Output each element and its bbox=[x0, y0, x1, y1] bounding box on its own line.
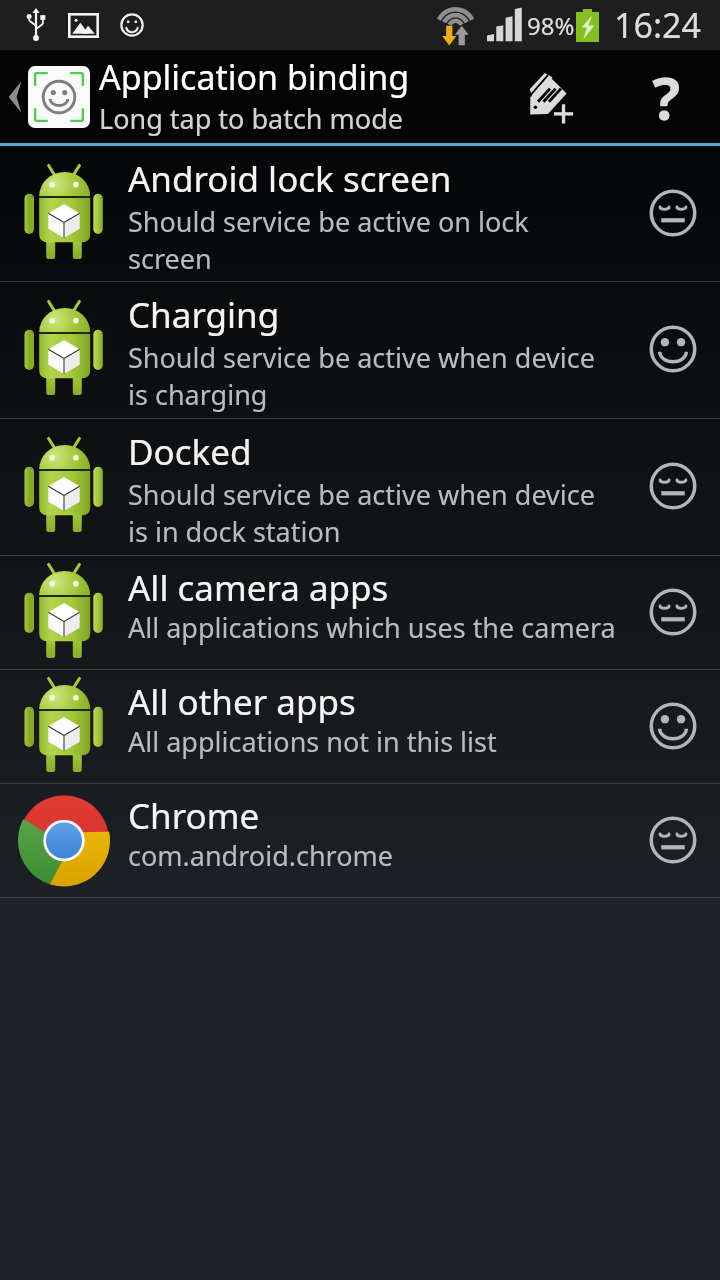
staticText: Should service be active when device is … bbox=[128, 476, 595, 550]
button[interactable]: Up bbox=[0, 50, 90, 143]
staticText: Application binding bbox=[99, 54, 410, 100]
staticText: Charging bbox=[128, 291, 280, 339]
staticText: All camera apps bbox=[128, 564, 389, 612]
staticText: Should service be active when device is … bbox=[128, 339, 595, 413]
staticText: com.android.chrome bbox=[128, 837, 394, 874]
staticText: Long tap to batch mode bbox=[99, 100, 403, 137]
staticText: Docked bbox=[128, 428, 252, 476]
staticText: 16:24 bbox=[614, 2, 701, 48]
staticText: All other apps bbox=[128, 678, 356, 726]
staticText: ? bbox=[652, 57, 681, 137]
staticText: 98% bbox=[527, 9, 575, 42]
button[interactable]: Chrome bbox=[0, 784, 720, 897]
staticText: All applications which uses the camera bbox=[128, 609, 616, 646]
staticText: All applications not in this list bbox=[128, 723, 497, 760]
button[interactable]: Charging bbox=[0, 282, 720, 418]
button[interactable]: Android lock screen bbox=[0, 146, 720, 281]
button[interactable]: Help bbox=[613, 50, 720, 143]
button[interactable]: Docked bbox=[0, 419, 720, 555]
staticText: Android lock screen bbox=[128, 155, 452, 203]
button[interactable]: Add binding bbox=[513, 50, 613, 143]
staticText: Should service be active on lock screen bbox=[128, 203, 529, 277]
button[interactable]: All camera apps bbox=[0, 556, 720, 669]
staticText: Chrome bbox=[128, 792, 260, 840]
button[interactable]: All other apps bbox=[0, 670, 720, 783]
